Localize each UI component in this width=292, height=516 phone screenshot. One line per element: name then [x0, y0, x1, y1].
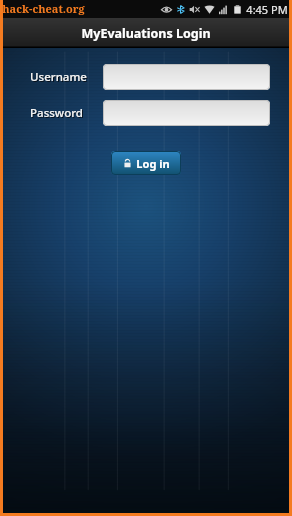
staticText: Username: [31, 70, 88, 86]
staticText: hack-cheat.org: [2, 1, 85, 16]
staticText: Log in: [136, 156, 170, 171]
button[interactable]: Log in: [111, 151, 181, 175]
staticText: 4:45 PM: [246, 2, 288, 17]
button[interactable]: Username input field: [103, 64, 270, 90]
staticText: Password: [31, 106, 84, 122]
staticText: Password: [30, 105, 83, 121]
staticText: Username: [30, 69, 87, 85]
button[interactable]: Password input field: [103, 100, 270, 126]
staticText: MyEvaluations Login: [81, 25, 211, 42]
